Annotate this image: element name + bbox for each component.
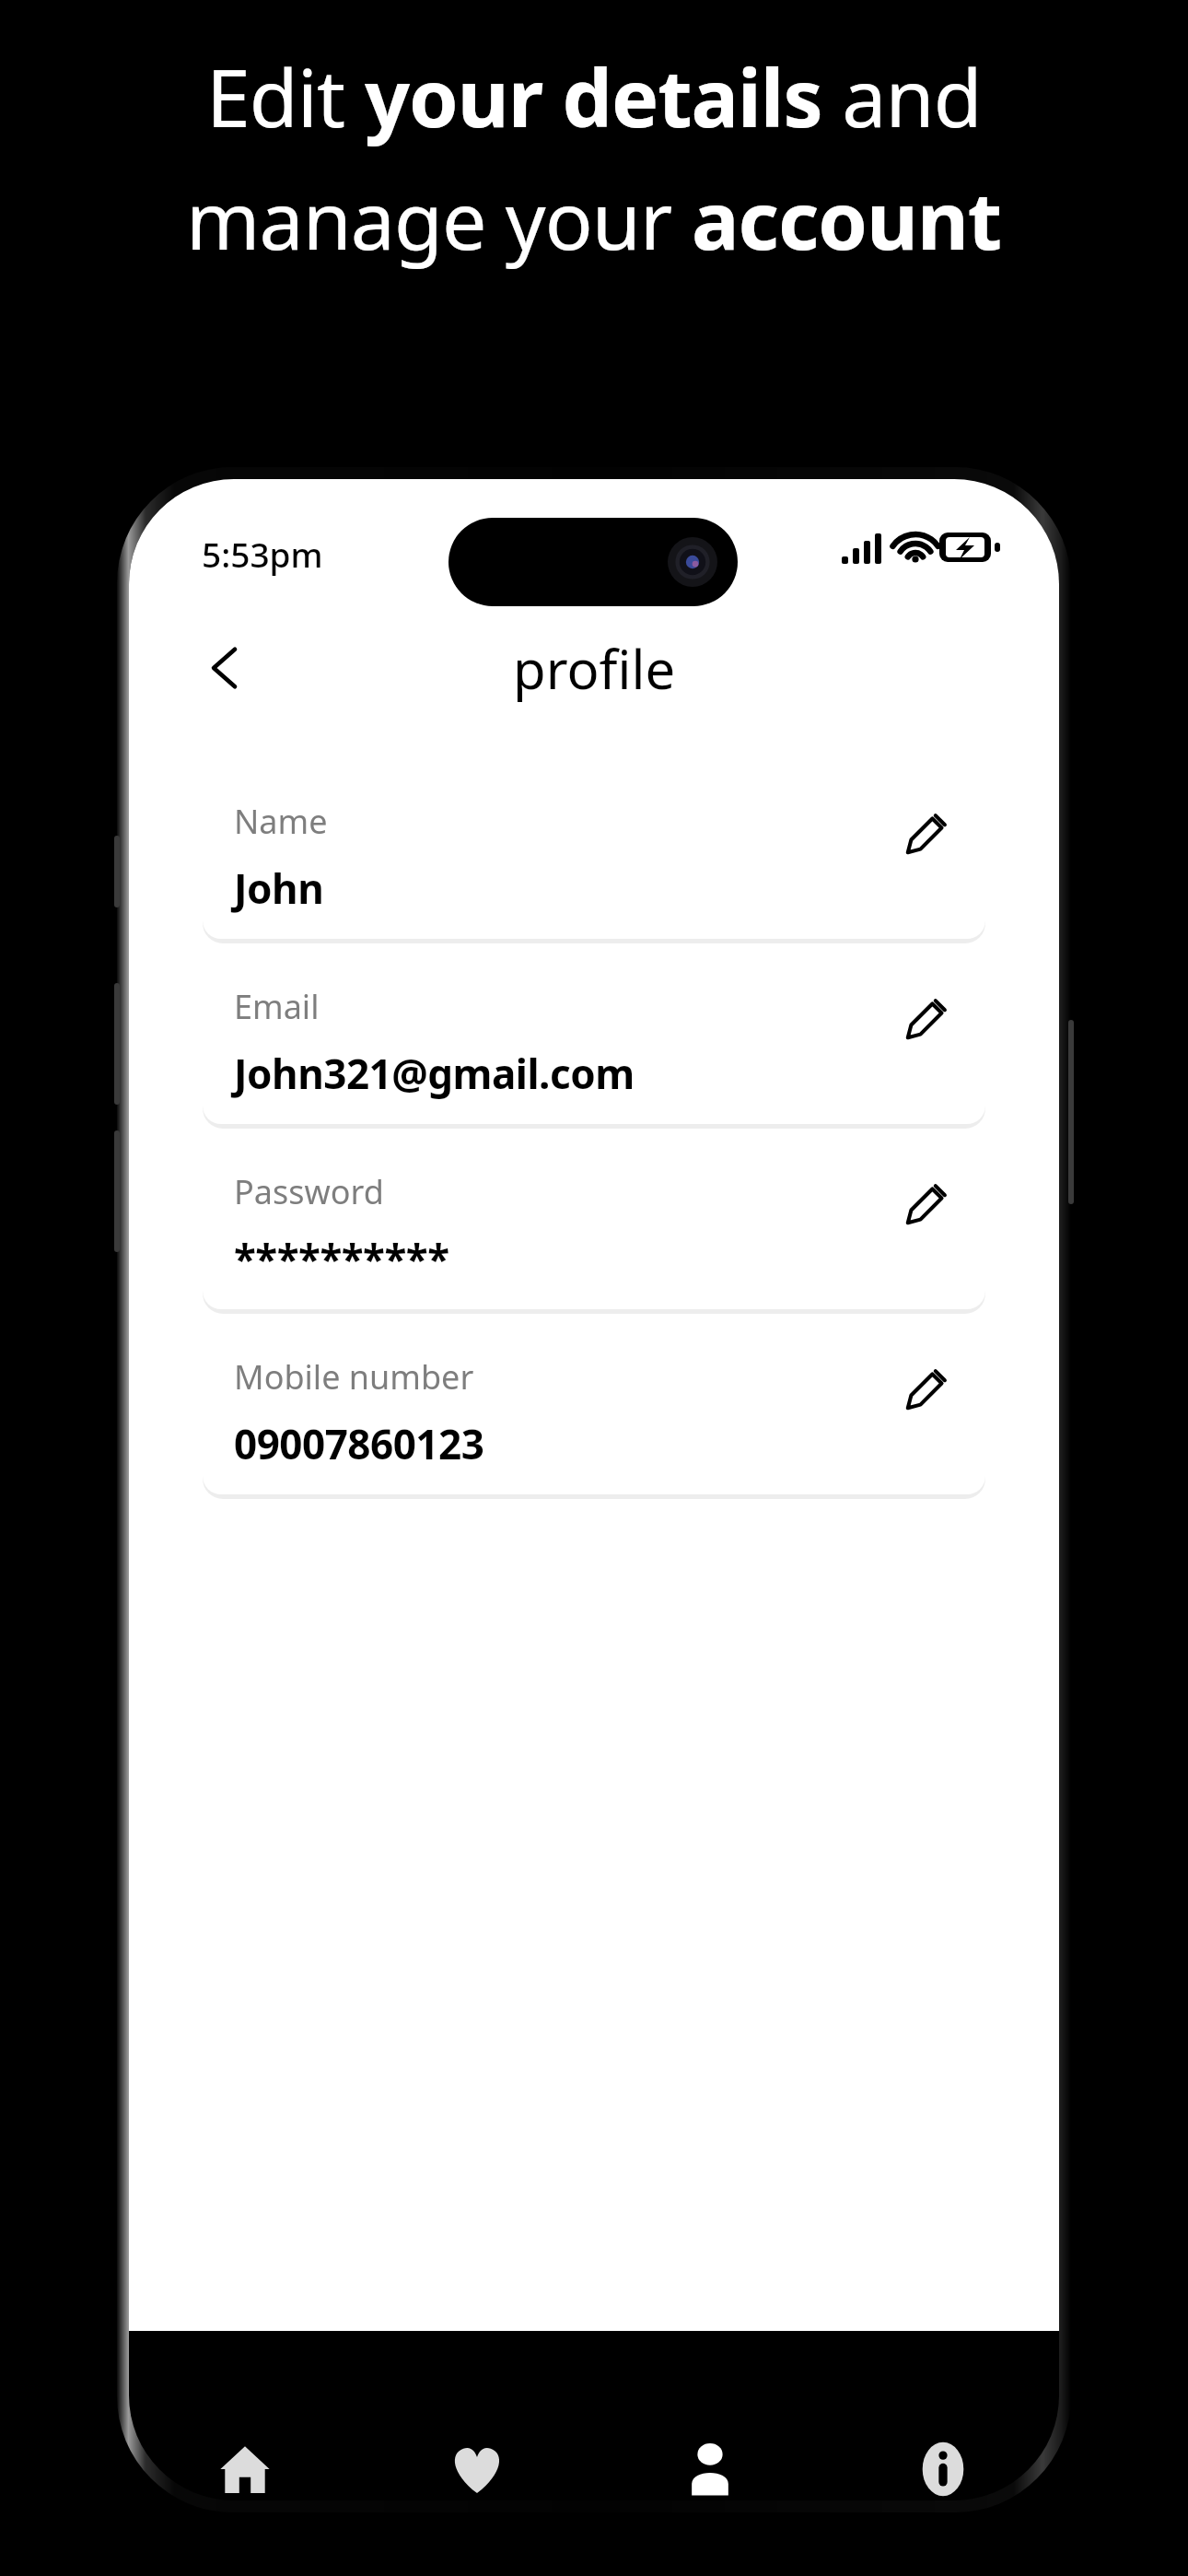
staticText: ********** bbox=[234, 1231, 449, 1286]
staticText: Email bbox=[234, 984, 320, 1029]
button[interactable]: Home bbox=[129, 2391, 361, 2500]
staticText: profile bbox=[513, 632, 676, 705]
button[interactable]: Edit Name bbox=[890, 799, 961, 871]
staticText: Password bbox=[234, 1169, 384, 1214]
staticText: John bbox=[234, 861, 324, 916]
button[interactable]: Password bbox=[203, 1149, 985, 1309]
button[interactable]: Edit Password bbox=[890, 1169, 961, 1241]
button[interactable]: Name bbox=[203, 779, 985, 939]
button[interactable]: Edit Email bbox=[890, 984, 961, 1056]
staticText: 09007860123 bbox=[234, 1416, 484, 1471]
button[interactable]: Edit Mobile number bbox=[890, 1354, 961, 1426]
button[interactable]: Profile bbox=[593, 2391, 826, 2500]
button[interactable]: Back bbox=[181, 624, 269, 712]
button[interactable]: Favourites bbox=[361, 2391, 593, 2500]
staticText: manage your bbox=[186, 165, 692, 273]
button[interactable]: Mobile number bbox=[203, 1334, 985, 1494]
staticText: 5:53pm bbox=[202, 531, 323, 577]
staticText: and bbox=[822, 42, 982, 150]
button[interactable]: Email bbox=[203, 964, 985, 1124]
staticText: Edit bbox=[206, 42, 365, 150]
staticText: Name bbox=[234, 799, 328, 844]
staticText: Mobile number bbox=[234, 1354, 474, 1399]
staticText: John321@gmail.com bbox=[234, 1046, 635, 1101]
button[interactable]: Info bbox=[826, 2391, 1059, 2500]
staticText: your details bbox=[365, 42, 822, 150]
staticText: account bbox=[692, 165, 1002, 273]
